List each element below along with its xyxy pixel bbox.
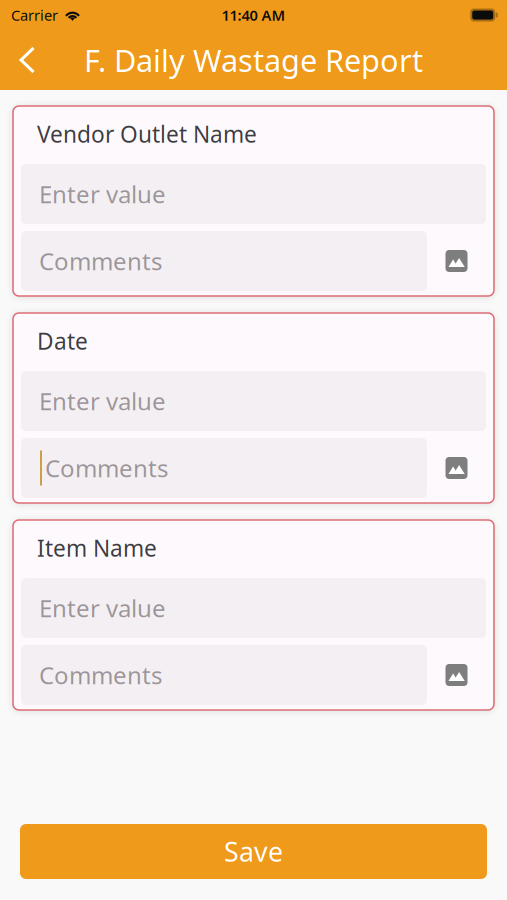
- button[interactable]: Attach photo: [427, 645, 486, 705]
- staticText: Comments: [39, 659, 162, 691]
- staticText: Save: [224, 834, 283, 869]
- staticText: Comments: [45, 452, 168, 484]
- staticText: Enter value: [39, 385, 166, 417]
- staticText: Vendor Outlet Name: [37, 119, 257, 149]
- button[interactable]: Enter value: [21, 371, 486, 431]
- staticText: Carrier: [11, 5, 58, 25]
- button[interactable]: Save: [20, 824, 487, 879]
- staticText: Comments: [39, 245, 162, 277]
- button[interactable]: Enter value: [21, 578, 486, 638]
- staticText: Enter value: [39, 592, 166, 624]
- button[interactable]: Attach photo: [427, 231, 486, 291]
- staticText: Date: [37, 326, 88, 356]
- button[interactable]: Attach photo: [427, 438, 486, 498]
- button[interactable]: Enter value: [21, 164, 486, 224]
- staticText: 11:40 AM: [221, 5, 285, 25]
- button[interactable]: Back: [0, 30, 49, 90]
- button[interactable]: Comments: [21, 645, 427, 705]
- button[interactable]: Comments: [21, 231, 427, 291]
- staticText: F. Daily Wastage Report: [84, 40, 423, 80]
- staticText: Item Name: [37, 533, 157, 563]
- button[interactable]: Comments: [21, 438, 427, 498]
- staticText: Enter value: [39, 178, 166, 210]
